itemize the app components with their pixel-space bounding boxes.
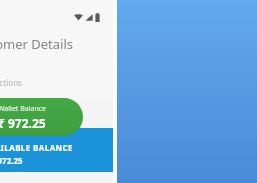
staticText: Wallet Balance	[0, 104, 47, 114]
staticText: Customer Details	[0, 35, 74, 53]
staticText: ₹ 972.25	[0, 115, 46, 131]
staticText: ₹ 1,972.25	[0, 155, 23, 166]
staticText: AVAILABLE BALANCE	[0, 142, 73, 153]
button[interactable]: Wallet Balance	[0, 98, 83, 136]
staticText: Recent transactions	[0, 77, 22, 88]
button[interactable]: AVAILABLE BALANCE	[0, 128, 113, 172]
